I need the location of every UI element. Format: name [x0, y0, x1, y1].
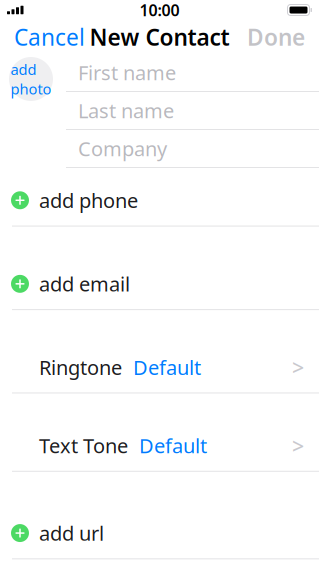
- button[interactable]: add email: [0, 227, 319, 309]
- staticText: Text Tone: [39, 432, 128, 459]
- staticText: >: [292, 431, 304, 460]
- staticText: Done: [247, 22, 305, 52]
- staticText: add photo: [10, 59, 51, 98]
- staticText: Company: [78, 135, 167, 162]
- staticText: Default: [139, 432, 207, 459]
- staticText: add email: [39, 271, 130, 297]
- staticText: Ringtone: [39, 354, 122, 381]
- button[interactable]: Company: [66, 130, 319, 167]
- staticText: Default: [133, 354, 201, 381]
- button[interactable]: add photo: [9, 57, 53, 101]
- staticText: Last name: [78, 97, 174, 124]
- staticText: add phone: [39, 187, 138, 214]
- staticText: Cancel: [14, 22, 85, 52]
- staticText: add url: [39, 520, 104, 546]
- staticText: >: [292, 353, 304, 381]
- staticText: New Contact: [89, 22, 229, 52]
- button[interactable]: First name: [66, 54, 319, 91]
- button[interactable]: Done: [235, 20, 319, 54]
- staticText: First name: [78, 59, 176, 86]
- button[interactable]: Text Tone: [0, 393, 319, 471]
- button[interactable]: Cancel: [0, 20, 97, 54]
- button[interactable]: Last name: [66, 92, 319, 129]
- staticText: 10:00: [139, 0, 179, 21]
- button[interactable]: add url: [0, 472, 319, 558]
- button[interactable]: Ringtone: [0, 310, 319, 392]
- button[interactable]: add phone: [0, 173, 319, 226]
